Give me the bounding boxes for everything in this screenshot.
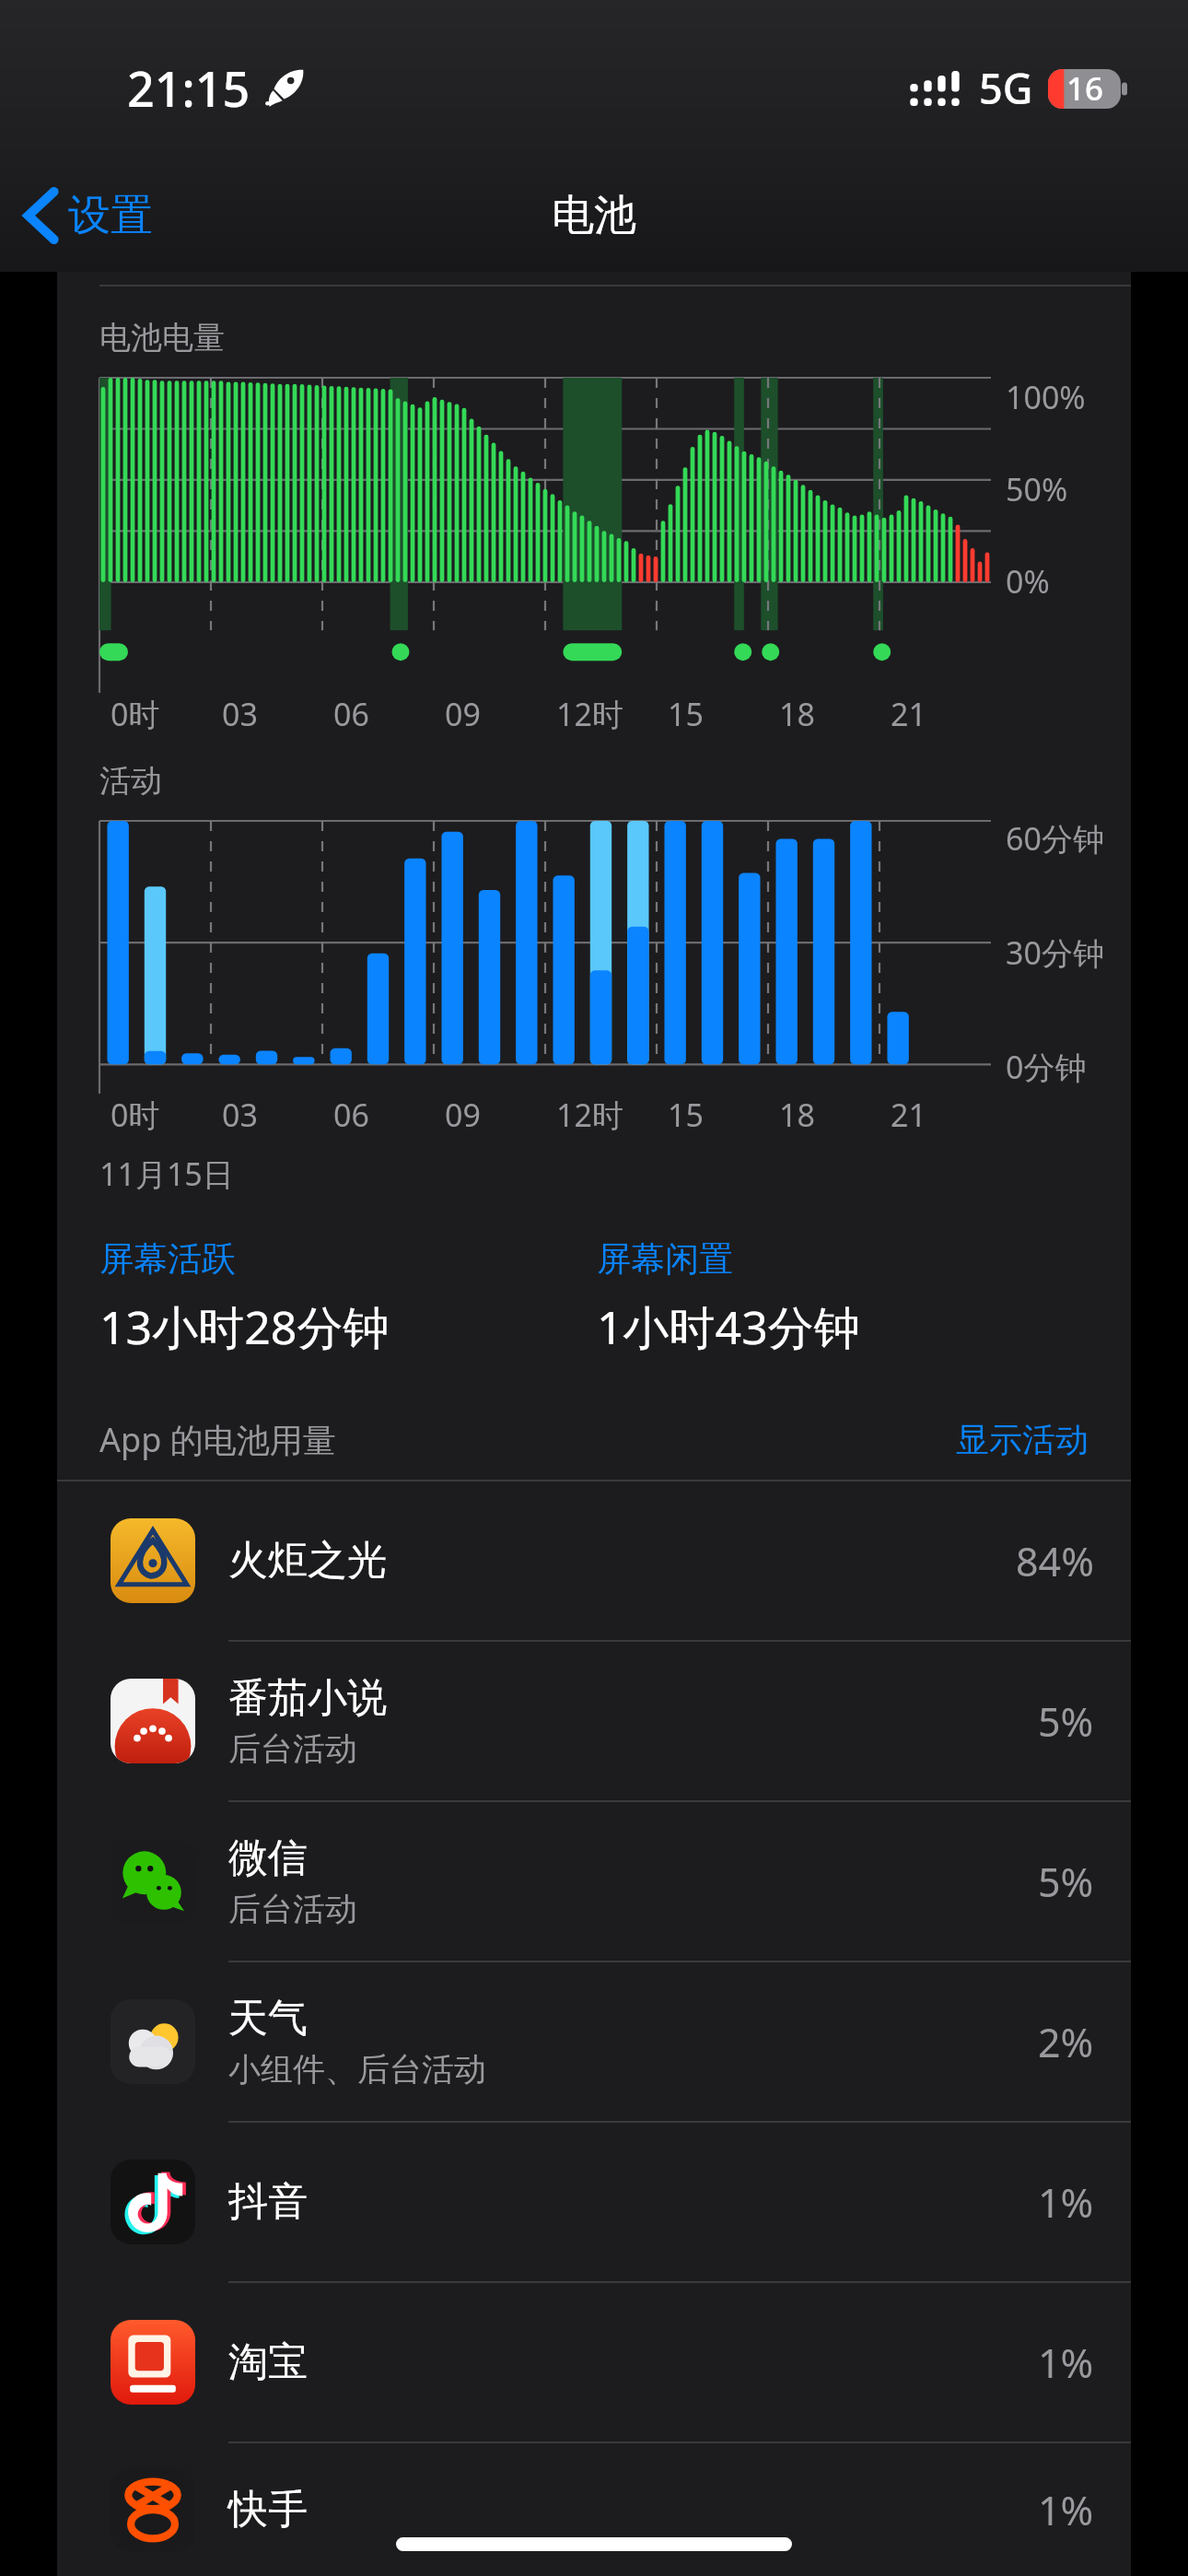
staticText: 11月15日 (99, 1153, 234, 1195)
staticText: 0% (1006, 560, 1050, 603)
staticText: 0时 (111, 1094, 160, 1136)
staticText: 18 (779, 1094, 815, 1136)
staticText: 12时 (556, 693, 623, 735)
staticText: 2% (1038, 2015, 1094, 2069)
button[interactable]: 抖音 (57, 2123, 1131, 2281)
staticText: 13小时28分钟 (99, 1295, 390, 1358)
staticText: 50% (1006, 468, 1068, 510)
staticText: 设置 (68, 189, 153, 242)
staticText: 21:15 (127, 55, 250, 121)
button[interactable]: 番茄小说 (57, 1642, 1131, 1800)
staticText: 21 (891, 1094, 926, 1136)
staticText: 5% (1038, 1694, 1094, 1749)
staticText: 5% (1038, 1855, 1094, 1909)
button[interactable]: 天气 (57, 1962, 1131, 2121)
staticText: 12时 (556, 1094, 623, 1136)
staticText: 03 (222, 1094, 258, 1136)
staticText: 1小时43分钟 (597, 1295, 860, 1358)
staticText: 09 (445, 693, 481, 735)
staticText: 抖音 (228, 2177, 308, 2227)
staticText: 后台活动 (228, 1889, 357, 1929)
staticText: 番茄小说 (228, 1673, 387, 1723)
staticText: 1% (1038, 2483, 1094, 2537)
staticText: 火炬之光 (228, 1536, 387, 1586)
staticText: 100% (1006, 376, 1086, 418)
staticText: 21 (891, 693, 926, 735)
staticText: 1% (1038, 2336, 1094, 2390)
staticText: App 的电池用量 (99, 1417, 336, 1462)
staticText: 电池 (552, 189, 636, 242)
staticText: 1% (1038, 2175, 1094, 2230)
button[interactable]: 返回设置 (0, 165, 177, 266)
button[interactable]: 火炬之光 (57, 1481, 1131, 1640)
staticText: 活动 (99, 761, 162, 801)
staticText: 06 (333, 693, 369, 735)
staticText: 快手 (228, 2485, 308, 2535)
staticText: 天气 (228, 1994, 308, 2043)
staticText: 30分钟 (1006, 931, 1104, 974)
button[interactable]: 微信 (57, 1802, 1131, 1961)
staticText: 屏幕闲置 (597, 1237, 733, 1281)
staticText: 淘宝 (228, 2337, 308, 2387)
staticText: 60分钟 (1006, 817, 1104, 860)
staticText: 显示活动 (956, 1419, 1089, 1460)
staticText: 屏幕活跃 (99, 1237, 236, 1281)
staticText: 15 (668, 693, 704, 735)
staticText: 84% (1016, 1534, 1094, 1588)
button[interactable]: 显示活动 (950, 1413, 1094, 1466)
staticText: 5G (979, 60, 1033, 116)
staticText: 0分钟 (1006, 1046, 1087, 1088)
staticText: 电池电量 (99, 318, 225, 357)
staticText: 18 (779, 693, 815, 735)
staticText: 小组件、后台活动 (228, 2049, 486, 2090)
staticText: 09 (445, 1094, 481, 1136)
staticText: 06 (333, 1094, 369, 1136)
other: 返回设置 (26, 189, 57, 242)
staticText: 03 (222, 693, 258, 735)
staticText: 16 (1066, 66, 1104, 111)
staticText: 微信 (228, 1833, 308, 1883)
staticText: 0时 (111, 693, 160, 735)
button[interactable]: 淘宝 (57, 2283, 1131, 2441)
button[interactable]: 快手 (57, 2443, 1131, 2576)
staticText: 15 (668, 1094, 704, 1136)
staticText: 后台活动 (228, 1728, 357, 1769)
